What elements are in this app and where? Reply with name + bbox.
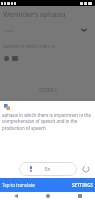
button[interactable]: Home (32, 192, 63, 200)
staticText: En (45, 166, 51, 172)
button[interactable]: Back (0, 192, 31, 200)
staticText: aphasia in which there is (3, 43, 56, 49)
staticText: Wernicke's aphasia (3, 10, 66, 20)
staticText: DETAILS (39, 87, 57, 93)
staticText: SETTINGS (72, 182, 93, 188)
staticText: Tap to translate (2, 182, 35, 188)
button[interactable]: Recents (64, 192, 95, 200)
button[interactable]: En (19, 162, 77, 176)
button[interactable]: noun (0, 24, 95, 36)
staticText: aphasia in which there is impairment in … (2, 112, 93, 132)
button[interactable]: Refresh (81, 164, 91, 174)
staticText: noun (4, 28, 14, 33)
